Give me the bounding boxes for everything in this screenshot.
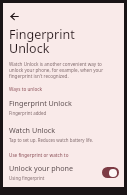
staticText: Using fingerprint (9, 175, 45, 181)
staticText: Fingerprint Unlock (9, 26, 118, 57)
staticText: Ways to unlock (9, 86, 43, 92)
button[interactable]: Back (7, 9, 21, 23)
staticText: Tap to set up. Reduces watch battery lif… (9, 137, 94, 143)
staticText: Use fingerprint or watch to (9, 152, 69, 158)
button[interactable]: Watch Unlock (3, 125, 124, 143)
button[interactable]: Unlock your phone (3, 163, 124, 181)
staticText: Fingerprint Unlock (9, 98, 72, 108)
button[interactable]: Toggle (102, 167, 119, 178)
button[interactable]: Fingerprint Unlock (3, 98, 124, 116)
staticText: Watch Unlock (9, 125, 56, 135)
staticText: Fingerprint added (9, 110, 47, 116)
staticText: Watch Unlock is another convenient way t… (9, 61, 116, 79)
staticText: Unlock your phone (9, 163, 74, 173)
